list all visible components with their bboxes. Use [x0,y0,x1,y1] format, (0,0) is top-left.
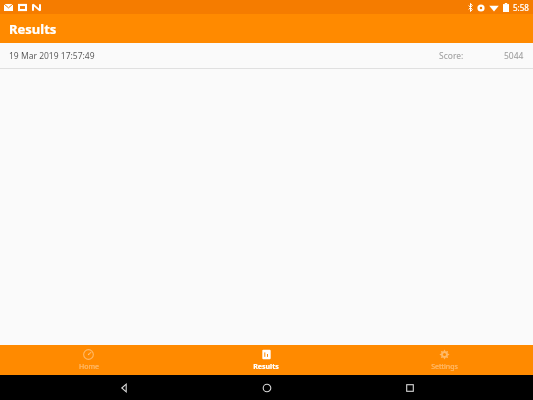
staticText: Score: [439,50,464,62]
button[interactable]: Recent apps [390,375,430,400]
staticText: Home [79,362,99,372]
staticText: 5:58 [513,2,529,13]
button[interactable]: Home [247,375,287,400]
button[interactable]: Home [0,345,177,375]
staticText: 5044 [504,50,524,62]
staticText: 19 Mar 2019 17:57:49 [9,50,95,62]
button[interactable]: Settings [355,345,533,375]
staticText: Settings [431,362,458,372]
staticText: Results [253,362,279,372]
staticText: Results [9,20,57,38]
button[interactable]: Back [104,375,144,400]
button[interactable]: Results [177,345,355,375]
button[interactable]: 19 Mar 2019 17:57:49 [0,43,533,69]
